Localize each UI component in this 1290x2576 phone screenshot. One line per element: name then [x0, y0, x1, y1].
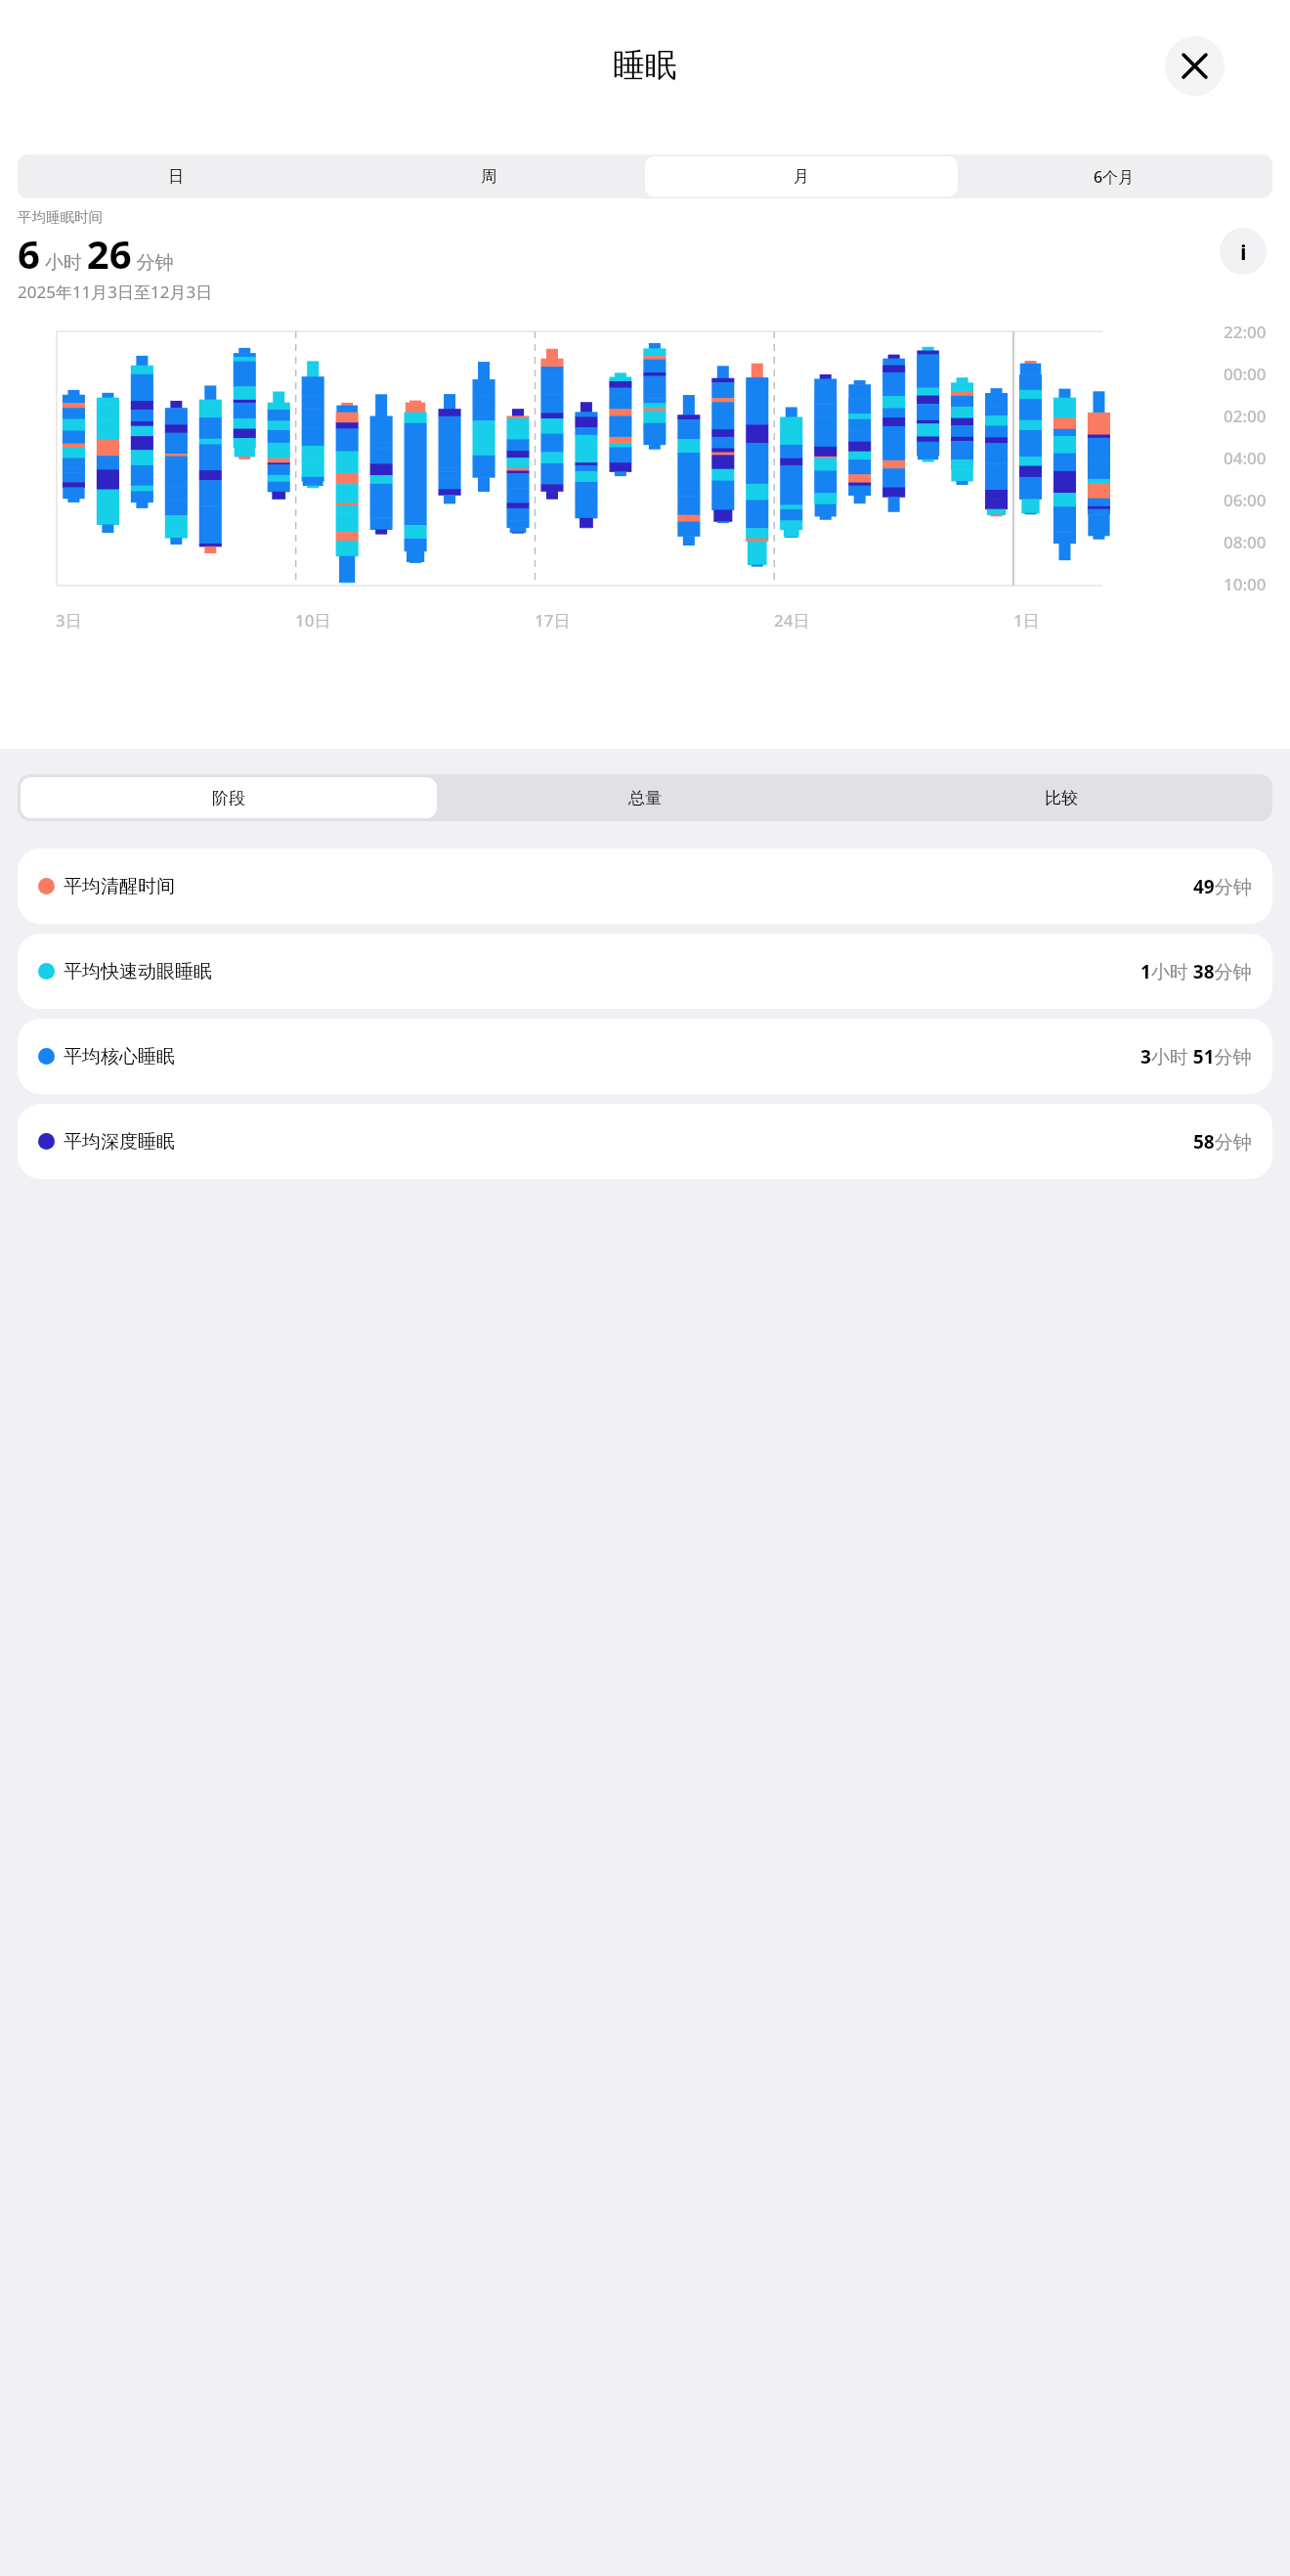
button[interactable]: 平均清醒时间 [18, 849, 1272, 924]
staticText: 2025年11月3日至12月3日 [18, 281, 213, 303]
button[interactable]: 平均快速动眼睡眠 [18, 934, 1272, 1009]
button[interactable]: 日 [20, 156, 332, 196]
staticText: 1小时 38分钟 [1140, 959, 1252, 984]
staticText: 10:00 [1224, 573, 1267, 595]
staticText: 日 [168, 167, 184, 187]
staticText: 平均睡眠时间 [18, 208, 103, 226]
staticText: 总量 [628, 788, 662, 808]
button[interactable]: 比较 [853, 777, 1269, 818]
staticText: 49分钟 [1193, 874, 1252, 899]
staticText: 6个月 [1094, 166, 1135, 188]
staticText: 睡眠 [613, 45, 677, 86]
button[interactable]: 周 [332, 156, 645, 196]
button[interactable]: 阶段 [21, 777, 437, 818]
staticText: 阶段 [212, 788, 245, 808]
staticText: 平均深度睡眠 [64, 1130, 175, 1154]
staticText: 6 小时 26 分钟 [18, 227, 174, 280]
staticText: 08:00 [1224, 531, 1267, 553]
staticText: 17日 [535, 609, 571, 632]
staticText: 周 [481, 167, 496, 187]
button[interactable]: 平均核心睡眠 [18, 1019, 1272, 1094]
staticText: 04:00 [1224, 447, 1267, 469]
staticText: 00:00 [1224, 363, 1267, 385]
staticText: 月 [794, 167, 809, 187]
staticText: 10日 [295, 609, 331, 632]
staticText: 比较 [1045, 788, 1078, 808]
button[interactable]: 平均深度睡眠 [18, 1104, 1272, 1179]
button[interactable]: 关闭 [1165, 36, 1225, 96]
staticText: 平均清醒时间 [64, 875, 175, 898]
staticText: 3日 [56, 609, 82, 632]
staticText: i [1240, 237, 1247, 266]
staticText: 3小时 51分钟 [1140, 1044, 1252, 1070]
staticText: 平均快速动眼睡眠 [64, 960, 212, 983]
button[interactable]: 总量 [437, 777, 853, 818]
staticText: 平均核心睡眠 [64, 1045, 175, 1069]
button[interactable]: 信息 [1220, 228, 1267, 275]
staticText: 22:00 [1224, 321, 1267, 343]
button[interactable]: 月 [645, 156, 958, 196]
staticText: 1日 [1013, 609, 1040, 632]
staticText: 24日 [774, 609, 810, 632]
button[interactable]: 6个月 [958, 156, 1270, 196]
staticText: 06:00 [1224, 489, 1267, 511]
staticText: 02:00 [1224, 405, 1267, 427]
staticText: 58分钟 [1193, 1129, 1252, 1155]
